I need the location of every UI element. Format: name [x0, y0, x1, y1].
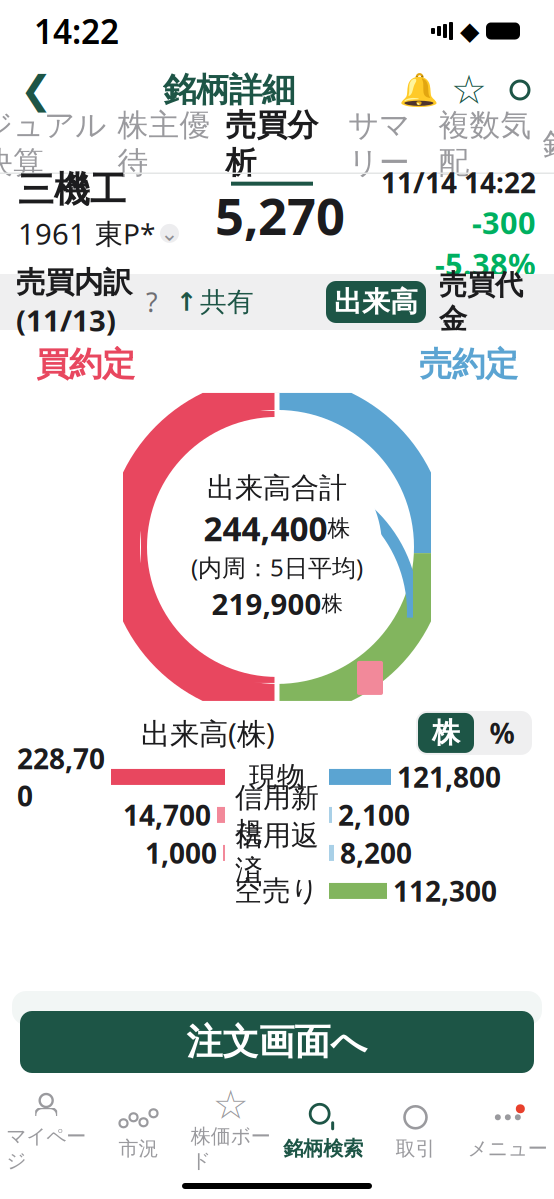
staticText: -300 [472, 202, 536, 243]
staticText: ジュアル決算 [0, 106, 106, 182]
staticText: 121,800 [397, 758, 501, 796]
staticText: ? [146, 284, 158, 320]
staticText: 売買内訳(11/13) [16, 264, 132, 339]
staticText: 売約定 [419, 344, 518, 385]
button[interactable]: ☆ [185, 1091, 277, 1173]
staticText: 出来高合計 [207, 471, 347, 505]
staticText: 🔔 [399, 72, 439, 108]
button[interactable]: マイページ [0, 1091, 92, 1173]
button[interactable]: 戻る [8, 64, 64, 116]
staticText: 空売り [234, 874, 319, 908]
staticText: 8,200 [340, 834, 412, 872]
staticText: ⌄ [160, 221, 178, 245]
staticText: 14,700 [123, 796, 211, 834]
staticText: 複数気配 [438, 106, 531, 182]
button[interactable]: 銘柄検索 [277, 1103, 369, 1161]
button[interactable]: % [474, 713, 530, 753]
staticText: 株 [327, 514, 350, 542]
staticText: サマリー [348, 106, 410, 182]
staticText: 244,400 [203, 506, 327, 550]
staticText: 東P* [95, 215, 155, 252]
staticText: 2,100 [338, 796, 410, 834]
button[interactable]: 設定 [494, 64, 546, 116]
button[interactable]: 東P* [95, 215, 179, 252]
staticText: 株主優待 [117, 106, 210, 182]
staticText: 株 [321, 591, 342, 617]
button[interactable]: アラート追加 [394, 64, 444, 116]
staticText: 市況 [118, 1136, 158, 1161]
staticText: 取引 [395, 1136, 435, 1161]
staticText: ❮ [20, 68, 52, 112]
button[interactable]: 市況 [92, 1103, 185, 1161]
staticText: 219,900 [211, 584, 321, 623]
staticText: 信用新規 [235, 781, 319, 849]
staticText: 買約定 [36, 344, 135, 385]
staticText: 三機工 [18, 168, 126, 212]
button[interactable]: 売買分析 [218, 118, 326, 174]
staticText: 共有 [200, 286, 254, 318]
staticText: 出来高(株) [141, 713, 275, 752]
button[interactable]: 複数気配 [432, 118, 538, 174]
staticText: 出来高 [334, 285, 418, 319]
staticText: % [489, 714, 514, 752]
staticText: 売買分析 [225, 106, 318, 182]
staticText: メニュー [468, 1136, 548, 1161]
staticText: 銘柄検索 [283, 1136, 363, 1161]
button[interactable]: 銘 [538, 118, 554, 174]
staticText: 株価ボード [191, 1124, 271, 1173]
staticText: 注文画面へ [186, 1020, 367, 1064]
button[interactable]: 売買代金 [426, 281, 536, 323]
button[interactable]: 株主優待 [110, 118, 218, 174]
staticText: 銘 [542, 125, 554, 163]
staticText: ↑ [176, 288, 197, 316]
staticText: 現物 [249, 760, 305, 794]
staticText: マイページ [6, 1124, 86, 1173]
button[interactable]: 注文画面へ [20, 1011, 534, 1073]
staticText: 銘柄詳細 [163, 69, 295, 110]
button[interactable]: お気に入り追加 [444, 64, 494, 116]
button[interactable]: ↑ [172, 282, 258, 322]
staticText: 1961 [18, 214, 86, 253]
button[interactable]: サマリー [326, 118, 432, 174]
staticText: 5,270 [215, 182, 345, 249]
staticText: -5.38% [435, 244, 536, 284]
button[interactable]: 取引 [369, 1103, 462, 1161]
staticText: 228,700 [17, 740, 105, 814]
button[interactable]: メニュー [462, 1103, 554, 1161]
staticText: ☆ [213, 1082, 249, 1128]
staticText: 14:22 [34, 9, 119, 53]
staticText: 112,300 [393, 872, 497, 910]
button[interactable]: ジュアル決算 [0, 118, 110, 174]
staticText: ☆ [451, 67, 487, 113]
staticText: (内周：5日平均) [191, 551, 363, 583]
staticText: 11/14 14:22 [381, 164, 536, 201]
staticText: 信用返済 [235, 819, 319, 887]
staticText: 株 [432, 716, 460, 750]
staticText: ◆ [460, 17, 479, 45]
button[interactable]: 出来高 [326, 281, 426, 323]
button[interactable]: 株 [418, 713, 474, 753]
staticText: 売買代金 [439, 268, 523, 336]
staticText: 1,000 [145, 834, 217, 872]
button[interactable]: ヘルプ [132, 282, 172, 322]
